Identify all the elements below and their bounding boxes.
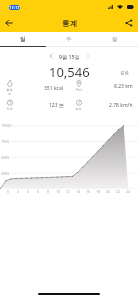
button[interactable]: Back [0,14,18,32]
button[interactable]: 월 [92,32,138,46]
staticText: 칼로리 [5,88,14,96]
staticText: 통계 [62,19,77,28]
staticText: 시간 [6,107,13,111]
staticText: 거리 [75,88,82,92]
staticText: 16 [86,189,91,194]
staticText: 걸음 [120,70,129,76]
staticText: 24 [126,189,131,194]
staticText: 2.78 km/h [109,102,133,109]
staticText: 11:17 [9,5,20,10]
staticText: 123 분 [49,102,64,109]
button[interactable]: 시간 [0,99,69,111]
staticText: 속도 [75,107,82,111]
button[interactable]: Previous day [46,51,56,61]
staticText: 18 [96,189,101,194]
staticText: 10000 [1,123,12,128]
staticText: 14 [76,189,81,194]
staticText: 22 [116,189,121,194]
staticText: 7500 [1,139,10,144]
button[interactable]: 속도 [69,99,138,111]
staticText: 9월 15일 [59,53,80,60]
staticText: 2 [17,189,20,194]
button[interactable]: 칼로리 [0,80,69,96]
staticText: 월 [112,36,118,43]
staticText: 4 [27,189,30,194]
staticText: 10,546 [49,63,90,81]
staticText: 2500 [1,171,10,176]
staticText: 20 [106,189,111,194]
staticText: 5000 [1,155,10,160]
staticText: 351 kcal [44,85,64,92]
staticText: 8.23 km [114,83,133,90]
button[interactable]: Next day [83,51,93,61]
staticText: 12 [66,189,71,194]
staticText: 10 [56,189,61,194]
button[interactable]: 일 [0,32,46,46]
button[interactable]: Share [120,14,138,32]
staticText: 8 [47,189,50,194]
staticText: 6 [37,189,40,194]
staticText: 주 [66,36,72,43]
staticText: 0 [7,189,10,194]
staticText: 일 [20,36,26,43]
button[interactable]: 거리 [69,80,138,92]
button[interactable]: 주 [46,32,92,46]
